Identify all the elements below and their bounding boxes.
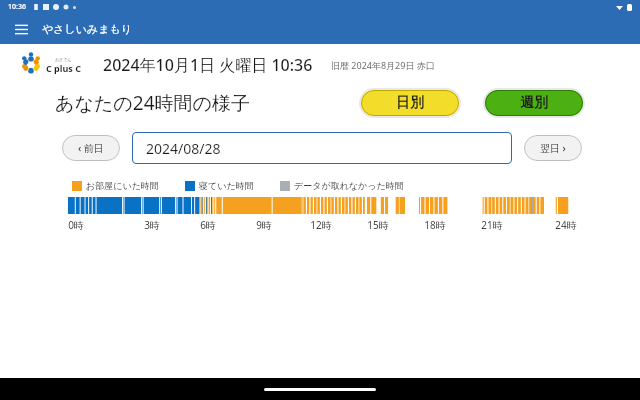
staticText: 3時 — [144, 218, 160, 232]
staticText: 24時 — [555, 218, 577, 232]
staticText: 2024/08/28 — [146, 139, 221, 158]
button[interactable]: Home — [264, 388, 376, 391]
staticText: ‹ 前日 — [78, 141, 104, 155]
staticText: やさしいみまもり — [42, 22, 133, 36]
staticText: 寝ていた時間 — [199, 180, 254, 191]
staticText: 6時 — [200, 218, 216, 232]
staticText: 12時 — [310, 218, 332, 232]
staticText: C plus C — [46, 62, 81, 74]
staticText: あなたの24時間の様子 — [55, 90, 250, 116]
staticText: 21時 — [481, 218, 503, 232]
staticText: 2024年10月1日 火曜日 10:36 — [103, 54, 313, 76]
staticText: 15時 — [367, 218, 389, 232]
staticText: データが取れなかった時間 — [294, 180, 404, 191]
button[interactable]: 2024/08/28 — [132, 132, 512, 164]
button[interactable]: 翌日 › — [524, 135, 582, 161]
button[interactable]: 日別 — [361, 90, 459, 116]
staticText: おさでん — [55, 57, 72, 62]
staticText: 日別 — [396, 94, 424, 112]
staticText: 0時 — [68, 218, 84, 232]
button[interactable]: Menu — [10, 18, 32, 40]
staticText: 9時 — [256, 218, 272, 232]
staticText: お部屋にいた時間 — [86, 180, 159, 191]
button[interactable]: ‹ 前日 — [62, 135, 120, 161]
staticText: 週別 — [520, 94, 548, 112]
staticText: 翌日 › — [540, 141, 566, 155]
staticText: 10:36 — [8, 2, 26, 12]
staticText: 18時 — [424, 218, 446, 232]
staticText: 旧暦 2024年8月29日 赤口 — [331, 59, 435, 71]
button[interactable]: 週別 — [485, 90, 583, 116]
